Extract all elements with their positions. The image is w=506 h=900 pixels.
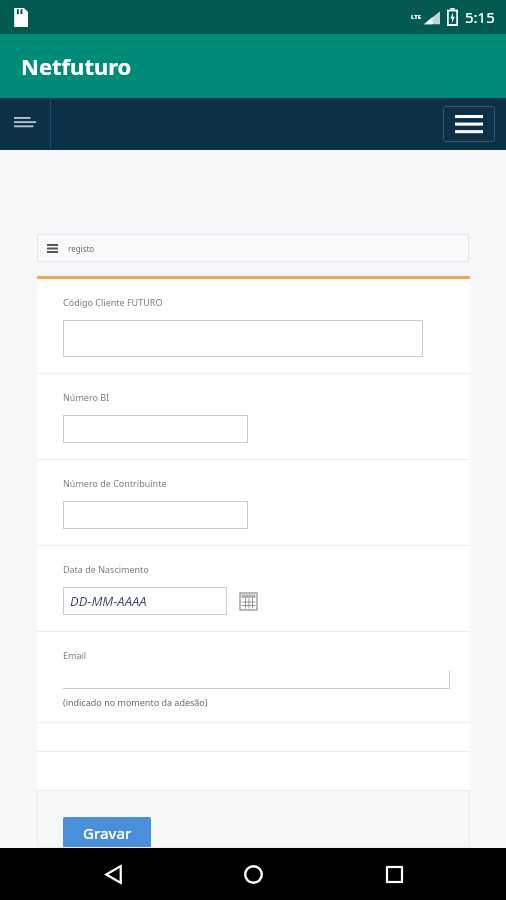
staticText: Código Cliente FUTURO [63,296,163,308]
staticText: Email [63,649,87,661]
staticText: Netfuturo [21,51,132,81]
staticText: Gravar [83,823,132,843]
button[interactable]: Menu [0,98,50,150]
button[interactable]: Home [225,848,281,900]
staticText: Número de Contribuinte [63,477,167,489]
button[interactable] [63,671,450,689]
staticText: Data de Nascimento [63,563,149,575]
button[interactable] [63,320,423,357]
staticText: LTE [411,13,422,21]
button[interactable] [63,501,248,529]
button[interactable]: Recent apps [366,848,422,900]
button[interactable]: registo [37,234,469,262]
button[interactable]: DD-MM-AAAA [63,587,227,615]
button[interactable]: Back [85,848,141,900]
button[interactable]: Gravar [63,817,151,848]
staticText: DD-MM-AAAA [70,592,147,610]
button[interactable]: Choose date [239,592,258,611]
staticText: (indicado no momento da adesão) [63,696,208,708]
staticText: registo [68,243,95,254]
button[interactable]: Open navigation menu [443,106,495,142]
staticText: Número BI [63,391,110,403]
button[interactable] [63,415,248,443]
staticText: 5:15 [465,7,495,27]
